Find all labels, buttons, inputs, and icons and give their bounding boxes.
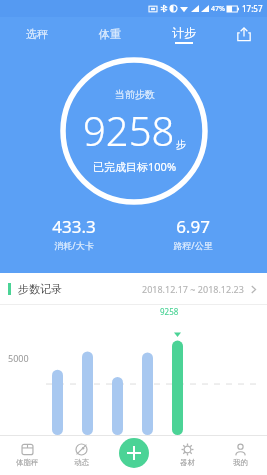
staticText: 2018.12.17 ~ 2018.12.23 <box>142 283 244 295</box>
staticText: 已完成目标100% <box>93 159 177 174</box>
staticText: 体重 <box>99 27 121 41</box>
staticText: 17:57 <box>242 3 263 14</box>
button[interactable]: 步数记录 <box>0 273 267 305</box>
button[interactable]: 计步 <box>147 17 221 51</box>
button[interactable]: 体脂秤 <box>0 435 54 475</box>
staticText: 选秤 <box>26 27 48 41</box>
staticText: 我的 <box>233 458 248 467</box>
button[interactable]: 体重 <box>73 17 147 51</box>
staticText: 器材 <box>180 458 195 467</box>
button[interactable]: 选秤 <box>0 17 73 51</box>
staticText: 9258 <box>83 103 175 157</box>
staticText: 路程/公里 <box>173 239 213 251</box>
button[interactable]: 动态 <box>54 435 108 475</box>
staticText: 步 <box>176 138 186 151</box>
button[interactable]: 分享 <box>221 17 267 51</box>
button[interactable]: 我的 <box>214 435 267 475</box>
staticText: 计步 <box>172 25 196 40</box>
button[interactable]: 6.97 <box>133 215 253 251</box>
staticText: 动态 <box>74 458 89 467</box>
staticText: 6.97 <box>176 215 210 238</box>
staticText: 9258 <box>160 306 179 317</box>
staticText: 体脂秤 <box>16 458 39 467</box>
staticText: 433.3 <box>52 215 96 238</box>
button[interactable]: 添加 <box>119 438 149 468</box>
staticText: 5000 <box>8 352 29 364</box>
button[interactable]: 433.3 <box>14 215 133 251</box>
staticText: 47% <box>211 4 225 14</box>
staticText: 步数记录 <box>18 282 62 296</box>
button[interactable]: 器材 <box>161 435 214 475</box>
staticText: 消耗/大卡 <box>54 239 94 251</box>
staticText: 当前步数 <box>115 88 155 101</box>
